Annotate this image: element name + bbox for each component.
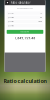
button[interactable]: Quantity A	[7, 11, 43, 15]
staticText: CALCULATE	[20, 31, 29, 33]
staticText: Quantity C	[8, 21, 14, 22]
button[interactable]: App icon	[6, 1, 9, 4]
button[interactable]: CALCULATE	[7, 30, 43, 34]
staticText: Quantity D	[8, 25, 14, 27]
staticText: Ratio calculation	[3, 77, 46, 85]
button[interactable]: Quantity C	[7, 20, 43, 23]
staticText: 1,849,159.48	[14, 36, 35, 40]
staticText: 25	[40, 16, 42, 18]
staticText: Quantity B	[8, 16, 14, 18]
button[interactable]: Quantity B	[7, 16, 43, 19]
staticText: Ratio calculator	[10, 1, 30, 4]
staticText: 1 849	[38, 21, 42, 22]
button[interactable]: Quantity D	[7, 24, 43, 27]
staticText: 12	[40, 12, 42, 14]
staticText: ENTER KNOWN VALUES	[17, 8, 33, 9]
staticText: Quantity A	[8, 12, 14, 14]
